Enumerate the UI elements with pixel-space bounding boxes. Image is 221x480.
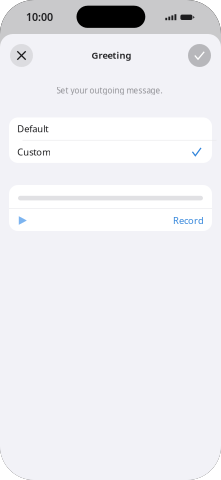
button[interactable]: Record — [9, 209, 212, 232]
staticText: Custom — [17, 146, 51, 158]
staticText: Default — [17, 122, 48, 135]
staticText: Record — [173, 214, 204, 227]
staticText: Greeting — [91, 49, 131, 61]
button[interactable]: Custom — [9, 141, 212, 163]
staticText: Set your outgoing message. — [56, 85, 162, 96]
button[interactable]: Close — [10, 44, 33, 67]
button[interactable]: Done — [188, 44, 211, 67]
button[interactable]: Default — [9, 117, 212, 140]
staticText: 10:00 — [26, 10, 53, 24]
